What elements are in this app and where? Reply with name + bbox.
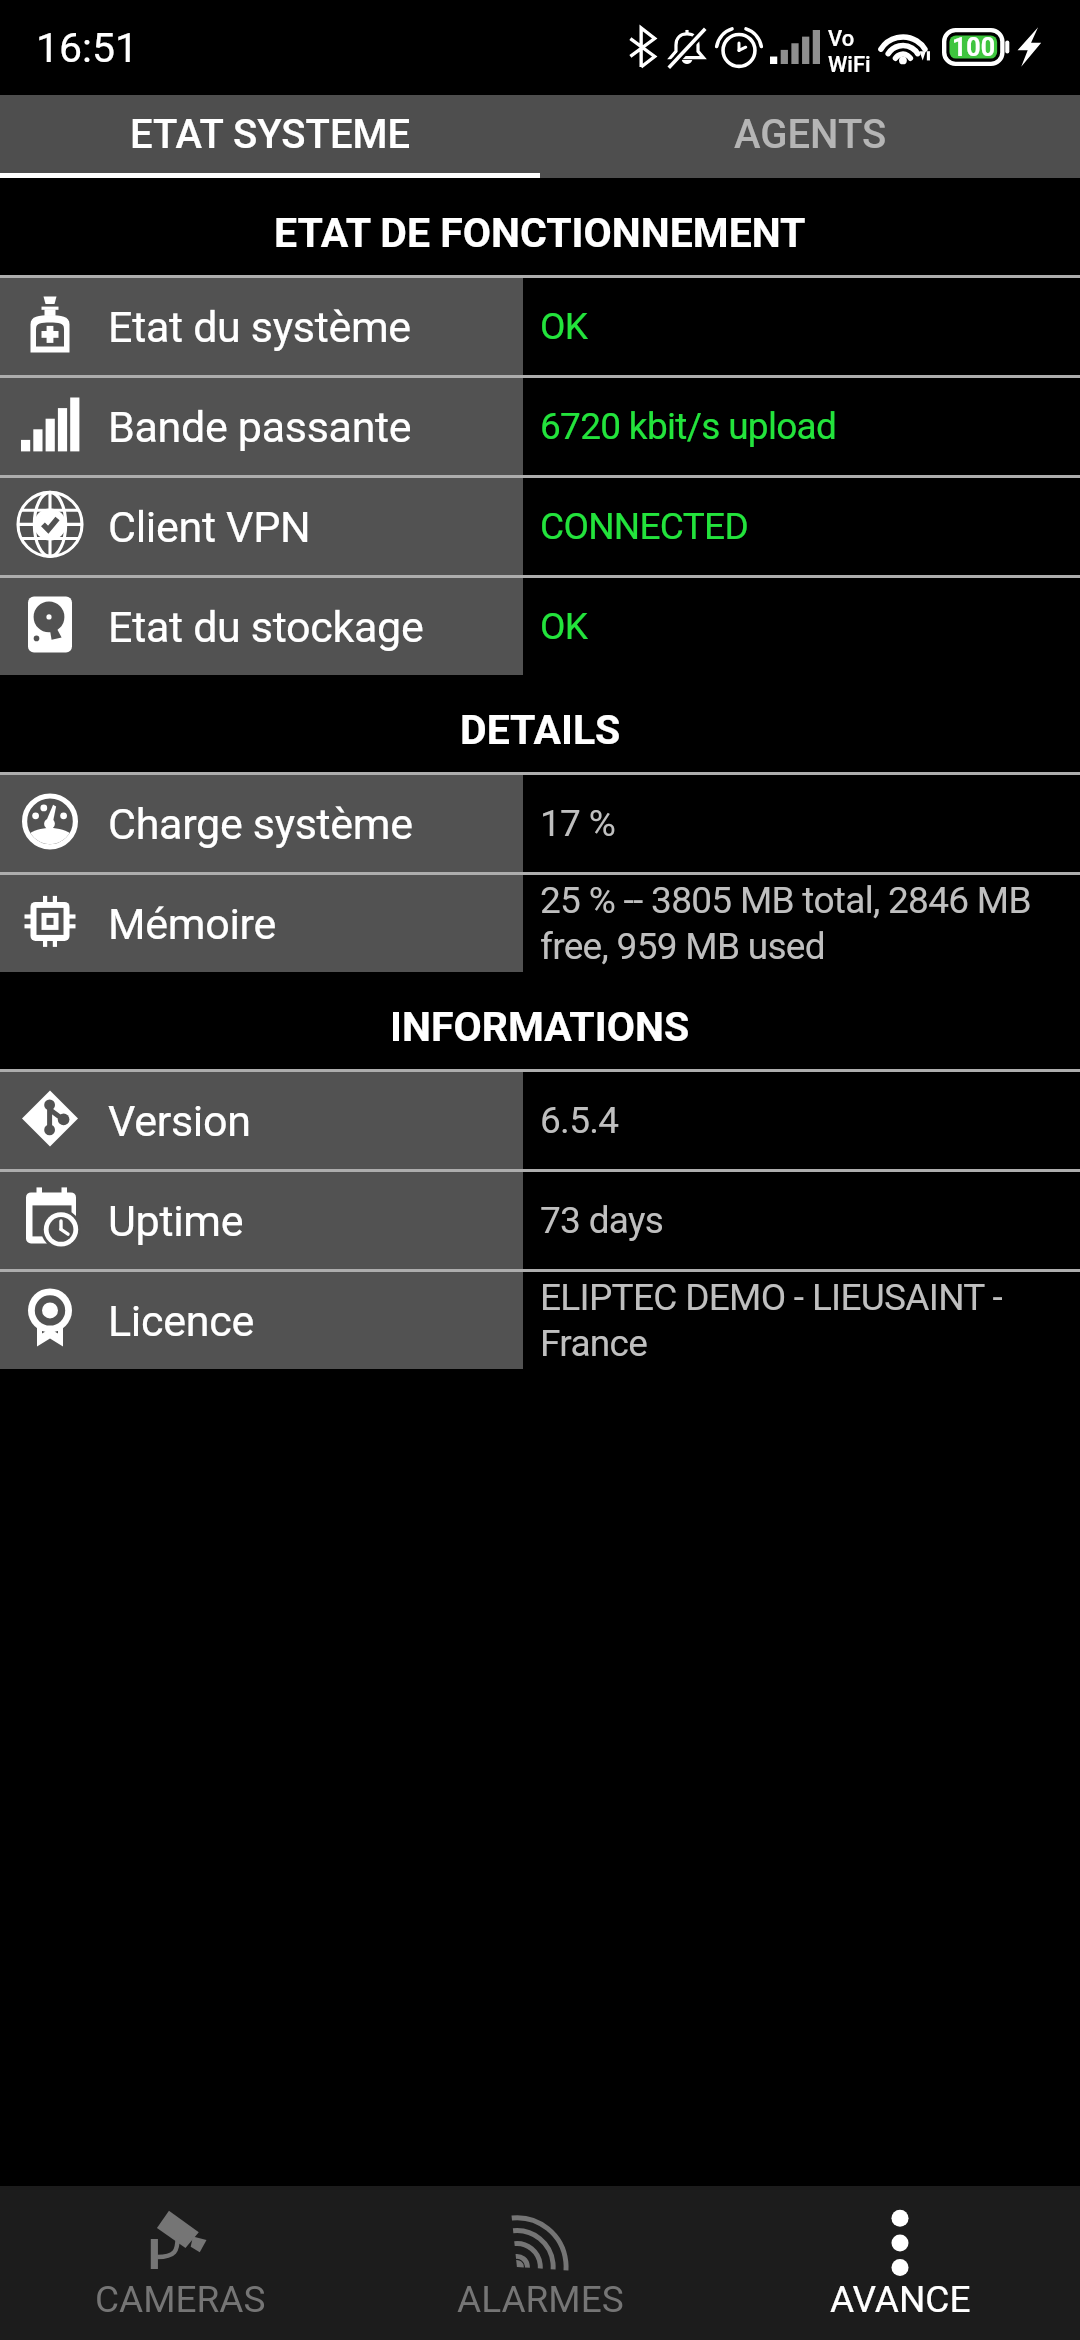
staticText: ELIPTEC DEMO - LIEUSAINT - France [540,1276,1002,1365]
button[interactable]: Alarmes [360,2186,720,2340]
button[interactable]: Version [0,1072,1080,1169]
staticText: 25 % -- 3805 MB total, 2846 MB free, 959… [540,879,1031,968]
button[interactable]: AGENTS [540,95,1080,173]
button[interactable]: Mémoire [0,875,1080,972]
staticText: Etat du stockage [108,602,424,652]
staticText: INFORMATIONS [390,1003,690,1051]
staticText: Charge système [108,799,413,849]
staticText: WiFi [828,52,871,78]
button[interactable]: ETAT SYSTEME [0,95,540,173]
staticText: AGENTS [734,111,887,158]
staticText: Etat du système [108,302,411,352]
staticText: 17 % [540,802,616,845]
button[interactable]: Client VPN [0,478,1080,575]
staticText: 73 days [540,1199,664,1242]
staticText: Vo [828,26,855,52]
staticText: Version [108,1096,251,1146]
staticText: 6.5.4 [540,1099,619,1142]
button[interactable]: Bande passante [0,378,1080,475]
staticText: Mémoire [108,899,276,949]
staticText: ETAT SYSTEME [130,111,411,158]
button[interactable]: Etat du système [0,278,1080,375]
staticText: AVANCE [830,2278,971,2321]
staticText: 16:51 [36,24,139,72]
staticText: 6720 kbit/s upload [540,405,837,448]
staticText: ETAT DE FONCTIONNEMENT [274,209,806,257]
button[interactable]: Charge système [0,775,1080,872]
staticText: DETAILS [460,706,621,754]
staticText: Licence [108,1296,254,1346]
staticText: OK [540,605,588,648]
staticText: OK [540,305,588,348]
staticText: ALARMES [457,2278,624,2321]
staticText: 100 [952,33,996,62]
staticText: CONNECTED [540,505,749,548]
button[interactable]: Etat du stockage [0,578,1080,675]
staticText: Client VPN [108,502,311,552]
button[interactable]: Uptime [0,1172,1080,1269]
button[interactable]: Licence [0,1272,1080,1369]
button[interactable]: Cameras [0,2186,360,2340]
staticText: Uptime [108,1196,244,1246]
staticText: Bande passante [108,402,412,452]
button[interactable]: Avance [720,2186,1080,2340]
other: Bluetooth [629,28,656,67]
staticText: CAMERAS [95,2278,266,2321]
